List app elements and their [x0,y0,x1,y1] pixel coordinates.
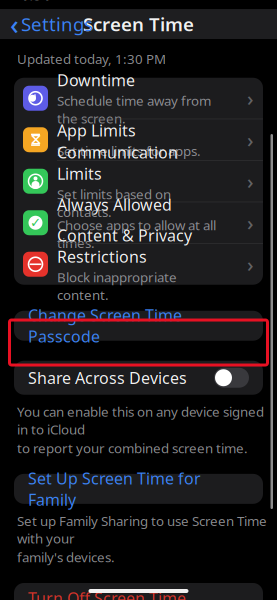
button[interactable]: ‹ [0,9,103,39]
staticText: Turn Off Screen Time [28,587,186,600]
staticText: Updated today, 1:30 PM [17,50,166,68]
button[interactable]: Set Up Screen Time for Family [14,474,263,504]
button[interactable]: ✓ [14,202,263,244]
button[interactable]: Downtime [14,78,263,119]
staticText: ⧖ [30,133,40,147]
staticText: Content & Privacy Restrictions [57,225,192,267]
button[interactable]: Change Screen Time Passcode [14,311,263,341]
staticText: to report your combined screen time. [17,439,248,457]
staticText: Downtime [57,69,135,91]
button[interactable]: Communication Limits [14,161,263,202]
staticText: Choose apps to allow at all times. [57,216,216,252]
staticText: › [247,168,254,195]
staticText: Set time limits for apps. [57,142,201,160]
staticText: Set Up Screen Time for Family [28,468,201,510]
staticText: App Limits [57,120,136,141]
staticText: › [247,251,254,278]
staticText: Screen Time [83,12,194,36]
staticText: ✓ [30,215,41,230]
staticText: Settings [21,12,93,36]
staticText: Always Allowed [57,194,172,215]
button[interactable]: Content & Privacy Restrictions [14,244,263,285]
staticText: Block inappropriate content. [57,268,177,304]
staticText: 1:31 [20,0,51,5]
staticText: Set up Family Sharing to use Screen Time… [17,512,267,547]
staticText: ‹ [10,6,19,42]
staticText: Communication Limits [57,142,178,184]
button[interactable]: Turn Off Screen Time [14,583,263,600]
staticText: › [247,85,254,112]
staticText: Set limits based on contacts. [57,185,171,221]
button[interactable]: Share Across Devices [14,361,263,395]
staticText: family's devices. [17,548,115,566]
staticText: › [247,126,254,153]
staticText: Share Across Devices [28,367,187,388]
button[interactable]: ⧖ [14,119,263,161]
staticText: Schedule time away from the screen. [57,92,211,127]
staticText: You can enable this on any device signed… [17,403,264,438]
staticText: Change Screen Time Passcode [28,304,182,347]
staticText: › [247,209,254,236]
